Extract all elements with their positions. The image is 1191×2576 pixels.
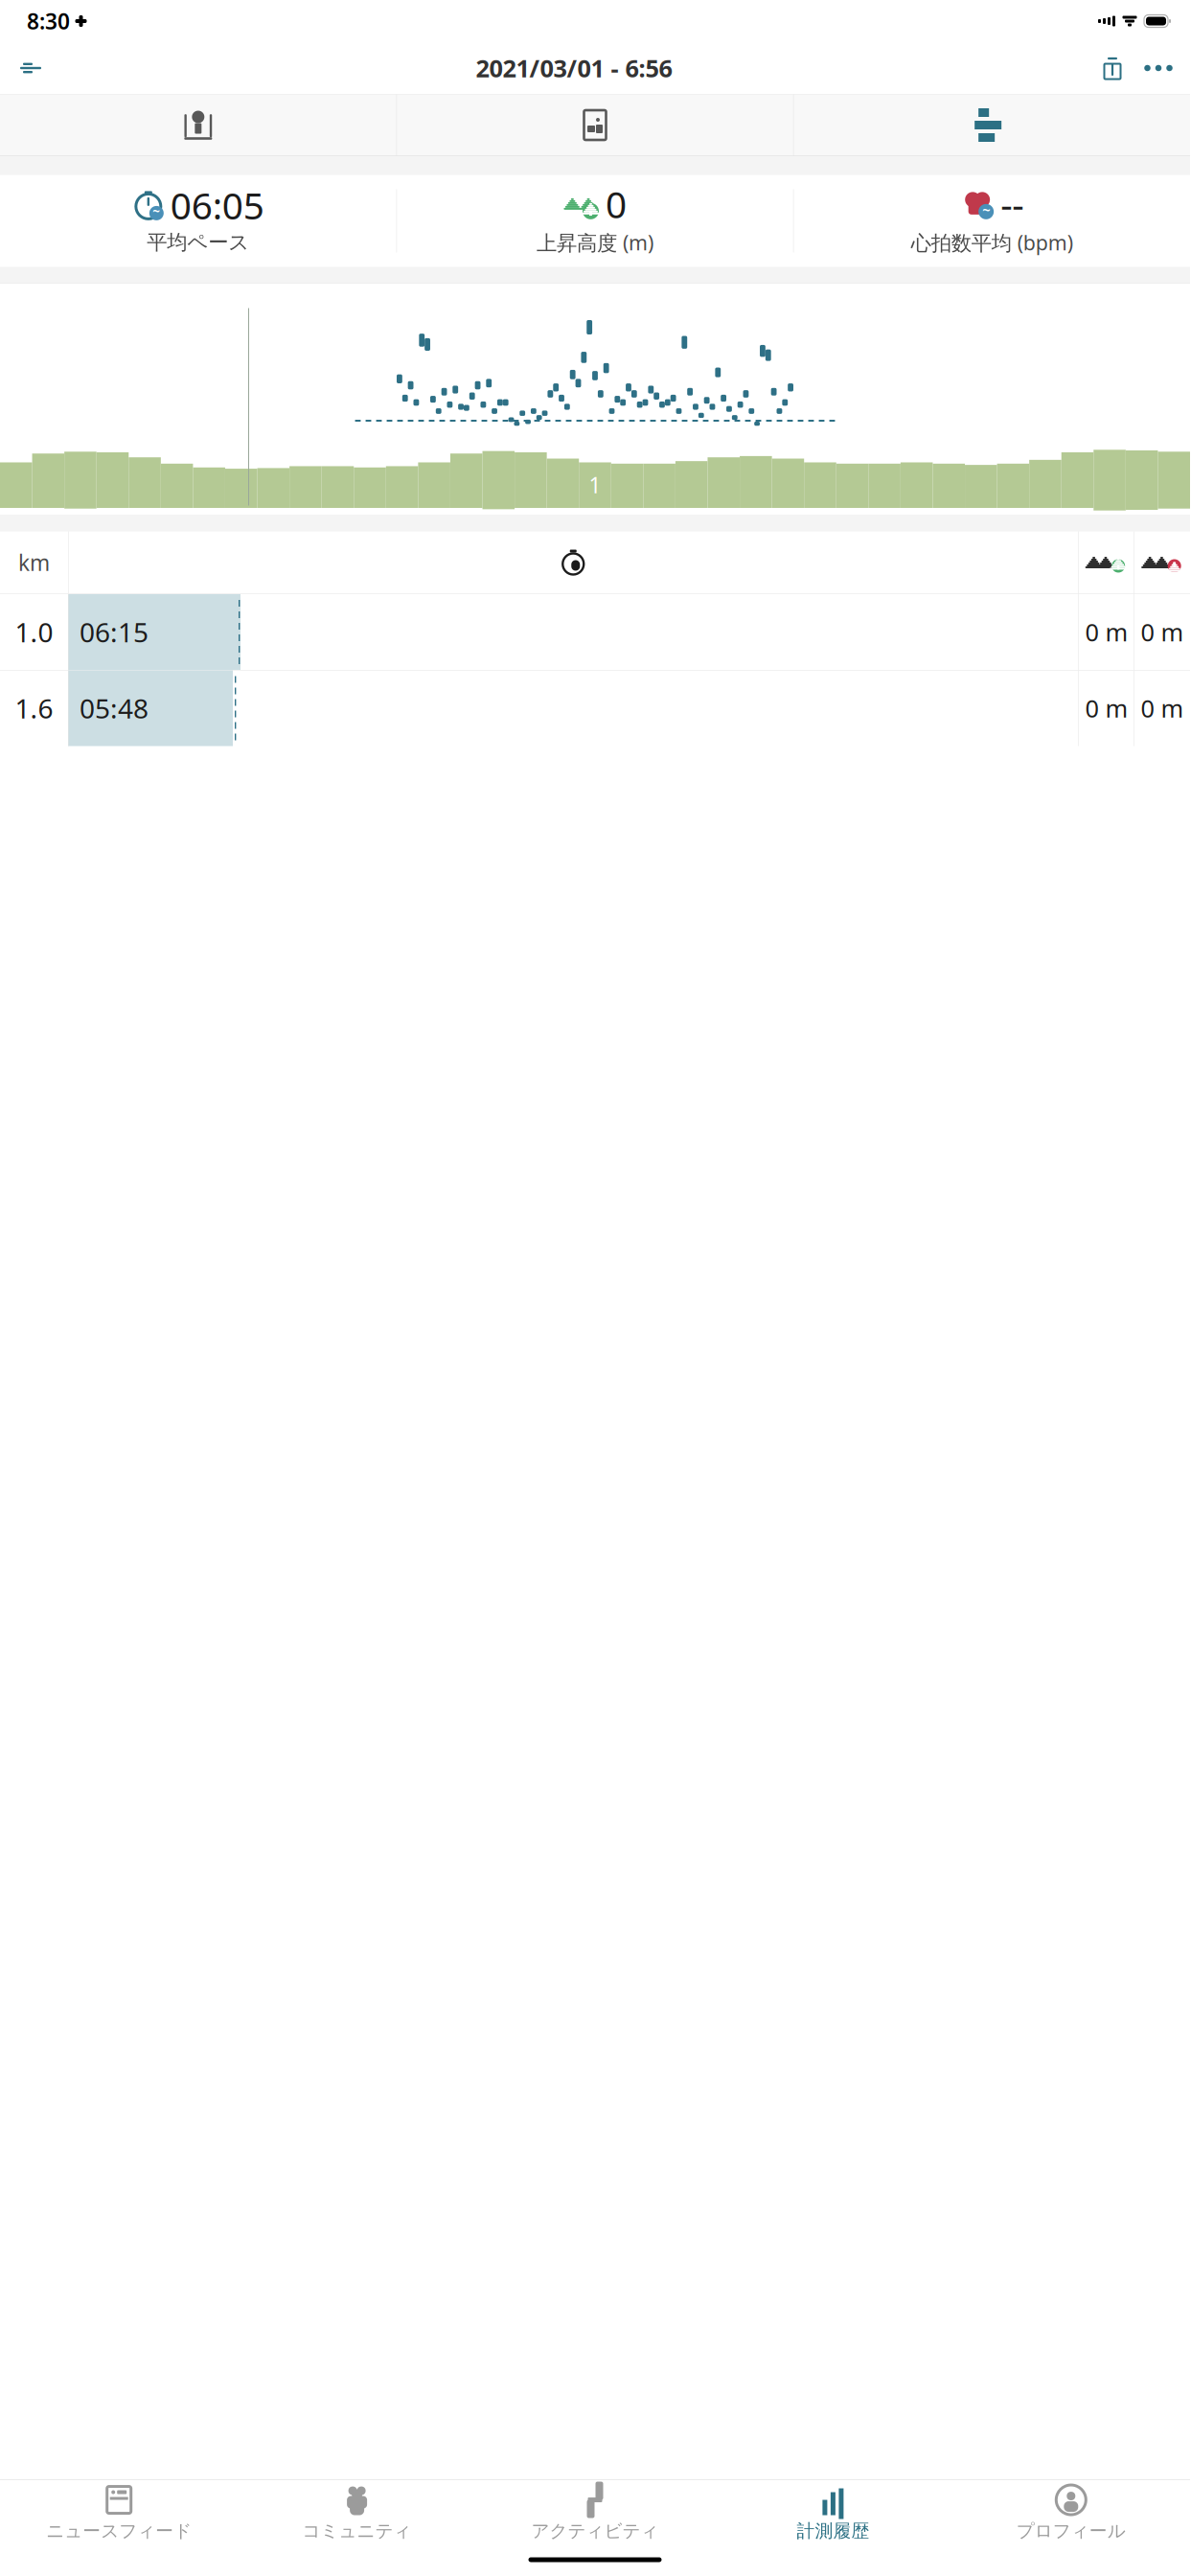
staticText: 05:48 bbox=[80, 690, 149, 726]
staticText: アクティビティ bbox=[531, 2520, 659, 2542]
staticText: 1 bbox=[589, 470, 601, 499]
staticText: 1.0 bbox=[15, 614, 53, 650]
staticText: 0 m bbox=[1085, 616, 1128, 648]
button[interactable]: 計測履歴 bbox=[714, 2476, 952, 2548]
staticText: ~ bbox=[982, 200, 990, 219]
button[interactable]: Map bbox=[0, 94, 396, 156]
staticText: 上昇高度 (m) bbox=[537, 229, 653, 256]
staticText: 平均ペース bbox=[147, 230, 249, 255]
staticText: 0 m bbox=[1141, 616, 1184, 648]
staticText: ニュースフィード bbox=[46, 2520, 192, 2542]
staticText: 1.6 bbox=[15, 690, 53, 726]
staticText: 計測履歴 bbox=[797, 2520, 869, 2542]
button[interactable]: ニュースフィード bbox=[0, 2476, 238, 2548]
staticText: プロフィール bbox=[1016, 2520, 1126, 2542]
staticText: -- bbox=[1001, 179, 1024, 229]
button[interactable]: プロフィール bbox=[952, 2476, 1190, 2548]
button[interactable]: 1.0 bbox=[0, 594, 1190, 670]
button[interactable]: Share bbox=[1090, 45, 1134, 91]
staticText: 06:15 bbox=[80, 614, 149, 650]
staticText: 0 bbox=[606, 179, 627, 229]
button[interactable]: 1.6 bbox=[0, 670, 1190, 746]
button[interactable]: Photos bbox=[397, 94, 793, 156]
staticText: 0 m bbox=[1085, 692, 1128, 724]
staticText: 06:05 bbox=[170, 180, 264, 230]
button[interactable]: Charts bbox=[794, 94, 1190, 156]
staticText: ~ bbox=[153, 203, 160, 220]
button[interactable]: コミュニティ bbox=[238, 2476, 476, 2548]
button[interactable]: アクティビティ bbox=[476, 2476, 714, 2548]
button[interactable]: Back bbox=[4, 45, 57, 91]
staticText: コミュニティ bbox=[302, 2520, 412, 2542]
staticText: 0 m bbox=[1141, 692, 1184, 724]
staticText: 心拍数平均 (bpm) bbox=[911, 229, 1073, 256]
button[interactable]: More options bbox=[1134, 45, 1182, 91]
staticText: 2021/03/01 - 6:56 bbox=[476, 52, 672, 84]
staticText: km bbox=[18, 548, 50, 577]
staticText: 8:30 bbox=[27, 7, 70, 35]
